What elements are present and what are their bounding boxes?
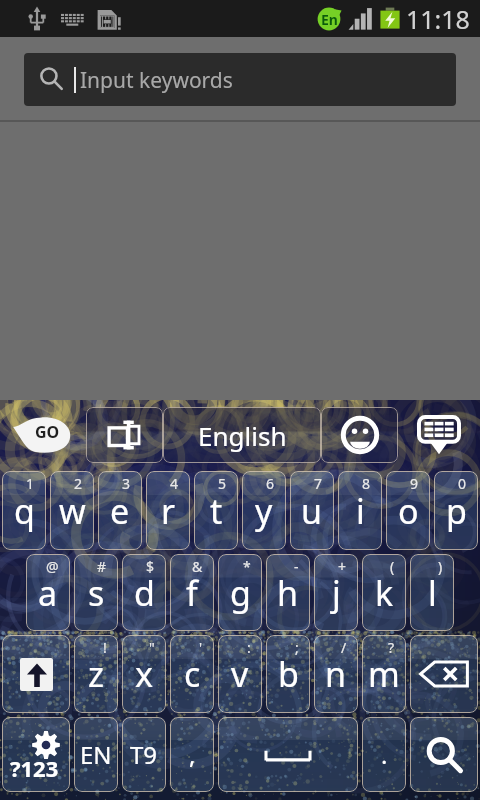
- button[interactable]: Hide keyboard: [412, 411, 466, 459]
- button[interactable]: z: [74, 635, 118, 713]
- staticText: /: [341, 638, 347, 657]
- staticText: 5: [218, 474, 227, 493]
- button[interactable]: p: [434, 471, 478, 550]
- staticText: 7: [314, 474, 323, 493]
- staticText: GO: [35, 421, 60, 443]
- button[interactable]: s: [74, 554, 118, 631]
- staticText: ;: [295, 638, 299, 657]
- button[interactable]: i: [338, 471, 382, 550]
- staticText: 1: [26, 474, 35, 493]
- staticText: @: [46, 557, 59, 576]
- staticText: 9: [410, 474, 419, 493]
- button[interactable]: t: [194, 471, 238, 550]
- staticText: ': [199, 638, 203, 657]
- staticText: ,: [189, 738, 196, 771]
- staticText: ?123: [10, 753, 59, 783]
- staticText: e: [110, 488, 130, 534]
- staticText: n: [325, 651, 347, 697]
- staticText: 6: [266, 474, 275, 493]
- staticText: *: [243, 557, 251, 576]
- staticText: -: [294, 557, 299, 576]
- button[interactable]: l: [410, 554, 454, 631]
- staticText: EN: [80, 738, 112, 771]
- staticText: #: [97, 557, 107, 576]
- button[interactable]: c: [170, 635, 214, 713]
- staticText: d: [134, 570, 155, 616]
- button[interactable]: f: [170, 554, 214, 631]
- staticText: l: [428, 570, 437, 616]
- button[interactable]: o: [386, 471, 430, 550]
- staticText: 0: [458, 474, 467, 493]
- button[interactable]: q: [2, 471, 46, 550]
- staticText: h: [277, 570, 299, 616]
- staticText: 8: [362, 474, 371, 493]
- button[interactable]: Switch layout: [86, 407, 163, 463]
- button[interactable]: v: [218, 635, 262, 713]
- staticText: b: [278, 651, 299, 697]
- staticText: q: [14, 488, 35, 534]
- staticText: $: [146, 557, 155, 576]
- staticText: 4: [170, 474, 179, 493]
- button[interactable]: Emoji: [321, 407, 398, 463]
- staticText: u: [301, 488, 323, 534]
- button[interactable]: m: [362, 635, 406, 713]
- button[interactable]: T9: [122, 717, 166, 792]
- staticText: t: [210, 488, 223, 534]
- staticText: English: [198, 418, 287, 453]
- button[interactable]: r: [146, 471, 190, 550]
- staticText: v: [231, 651, 249, 697]
- staticText: f: [186, 570, 198, 616]
- button[interactable]: w: [50, 471, 94, 550]
- button[interactable]: e: [98, 471, 142, 550]
- button[interactable]: Shift: [2, 635, 70, 713]
- button[interactable]: a: [26, 554, 70, 631]
- staticText: i: [356, 488, 365, 534]
- staticText: .: [381, 738, 388, 771]
- staticText: o: [398, 488, 419, 534]
- button[interactable]: y: [242, 471, 286, 550]
- button[interactable]: d: [122, 554, 166, 631]
- button[interactable]: k: [362, 554, 406, 631]
- staticText: c: [184, 651, 201, 697]
- button[interactable]: x: [122, 635, 166, 713]
- staticText: 2: [74, 474, 83, 493]
- staticText: 11:18: [406, 2, 470, 36]
- staticText: p: [446, 488, 467, 534]
- button[interactable]: Symbols: [2, 717, 70, 792]
- button[interactable]: Search: [410, 717, 478, 792]
- staticText: k: [375, 570, 394, 616]
- button[interactable]: Input keywords: [24, 53, 456, 106]
- button[interactable]: n: [314, 635, 358, 713]
- button[interactable]: EN: [74, 717, 118, 792]
- staticText: +: [338, 557, 347, 576]
- button[interactable]: h: [266, 554, 310, 631]
- button[interactable]: Backspace: [410, 635, 478, 713]
- staticText: g: [230, 570, 251, 616]
- button[interactable]: u: [290, 471, 334, 550]
- staticText: r: [161, 488, 176, 534]
- staticText: z: [88, 651, 104, 697]
- staticText: ?: [388, 638, 395, 657]
- staticText: x: [135, 651, 153, 697]
- staticText: m: [368, 651, 400, 697]
- staticText: !: [103, 638, 107, 657]
- staticText: w: [59, 488, 86, 534]
- button[interactable]: .: [362, 717, 406, 792]
- staticText: 3: [122, 474, 131, 493]
- staticText: T9: [130, 738, 158, 771]
- staticText: ": [149, 638, 155, 657]
- button[interactable]: English: [163, 407, 321, 463]
- staticText: j: [332, 570, 341, 616]
- staticText: Input keywords: [80, 66, 233, 95]
- staticText: y: [255, 488, 273, 534]
- button[interactable]: Space: [218, 717, 358, 792]
- button[interactable]: j: [314, 554, 358, 631]
- staticText: &: [192, 557, 203, 576]
- button[interactable]: ,: [170, 717, 214, 792]
- staticText: (: [390, 557, 395, 576]
- button[interactable]: g: [218, 554, 262, 631]
- staticText: En: [321, 10, 338, 29]
- button[interactable]: Go: [12, 415, 74, 455]
- button[interactable]: b: [266, 635, 310, 713]
- staticText: s: [88, 570, 105, 616]
